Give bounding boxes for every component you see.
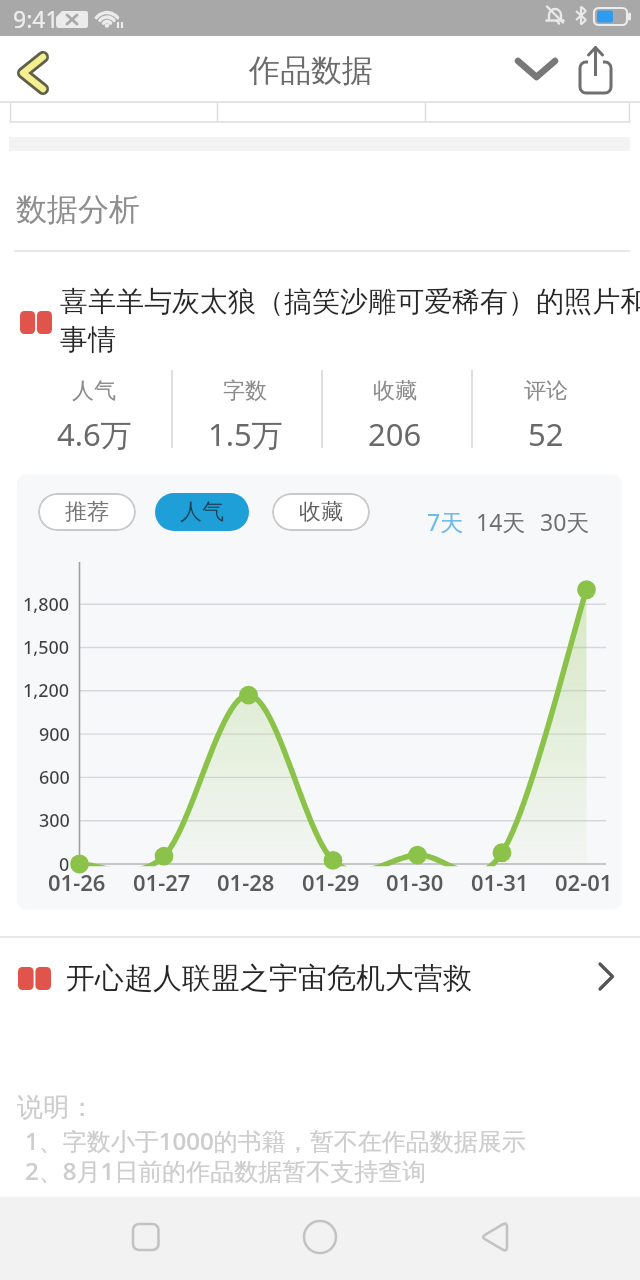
button[interactable]: 7天	[413, 504, 477, 538]
staticText: 收藏	[299, 498, 343, 526]
staticText: 推荐	[65, 498, 109, 526]
staticText: 人气	[72, 377, 116, 405]
staticText: 喜羊羊与灰太狼（搞笑沙雕可爱稀有）的照片和事情	[60, 284, 640, 358]
staticText: 1、字数小于1000的书籍，暂不在作品数据展示	[25, 1124, 526, 1156]
staticText: 01-27	[133, 867, 191, 895]
staticText: 说明：	[17, 1091, 95, 1123]
staticText: 1,200	[23, 678, 70, 703]
button[interactable]	[116, 1207, 176, 1267]
button[interactable]: 推荐	[38, 493, 136, 531]
staticText: 收藏	[373, 377, 417, 405]
staticText: 1.5万	[208, 413, 283, 455]
staticText: 数据分析	[16, 190, 140, 226]
staticText: 评论	[524, 377, 568, 405]
staticText: 900	[39, 722, 70, 747]
button[interactable]	[290, 1207, 350, 1267]
staticText: 01-31	[471, 867, 529, 895]
staticText: 14天	[476, 506, 526, 537]
staticText: 30天	[540, 506, 590, 537]
button[interactable]: 开心超人联盟之宇宙危机大营救	[0, 948, 640, 1004]
button[interactable]: 30天	[532, 504, 597, 538]
staticText: 字数	[223, 377, 267, 405]
staticText: 开心超人联盟之宇宙危机大营救	[66, 960, 472, 997]
staticText: 01-29	[302, 867, 360, 895]
staticText: 02-01	[555, 867, 613, 895]
staticText: 01-28	[217, 867, 275, 895]
button[interactable]	[574, 42, 622, 98]
button[interactable]	[505, 48, 567, 92]
staticText: 206	[368, 413, 422, 455]
staticText: 01-30	[386, 867, 444, 895]
staticText: 0	[59, 852, 70, 877]
staticText: 600	[39, 765, 70, 790]
staticText: 人气	[180, 498, 224, 526]
button[interactable]: 收藏	[272, 493, 370, 531]
staticText: 2、8月1日前的作品数据暂不支持查询	[25, 1154, 427, 1186]
staticText: 300	[39, 808, 70, 833]
staticText: 作品数据	[249, 51, 373, 90]
staticText: 4.6万	[57, 413, 132, 455]
staticText: 9:41	[13, 3, 59, 33]
button[interactable]	[464, 1207, 524, 1267]
staticText: 7天	[427, 506, 464, 537]
staticText: 1,500	[23, 635, 70, 660]
staticText: 1,800	[23, 592, 70, 617]
button[interactable]: 人气	[155, 493, 249, 531]
button[interactable]	[6, 44, 60, 102]
staticText: 01-26	[48, 867, 106, 895]
button[interactable]: 14天	[468, 504, 533, 538]
staticText: 52	[528, 413, 564, 455]
